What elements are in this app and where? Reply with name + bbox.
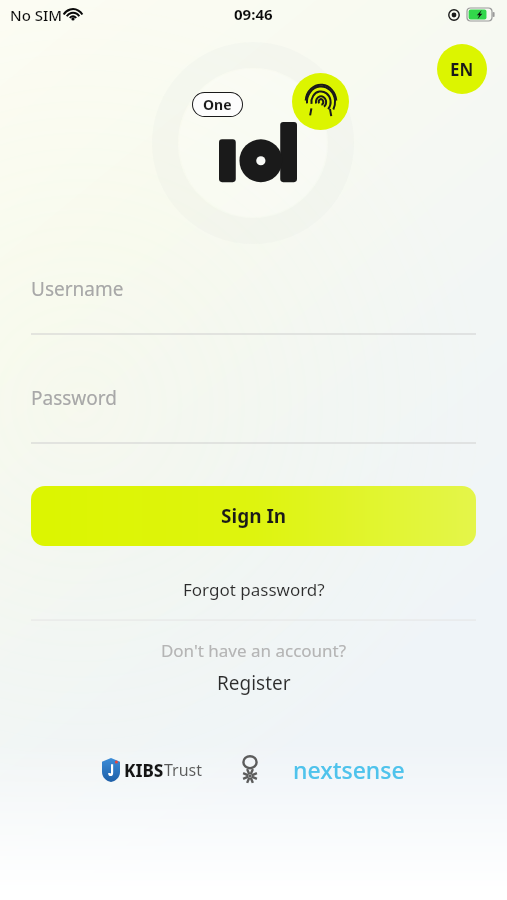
- staticText: Username: [31, 276, 124, 302]
- staticText: KIBS: [124, 759, 164, 782]
- button[interactable]: Biometric sign in: [292, 73, 349, 130]
- staticText: Forgot password?: [183, 578, 325, 601]
- staticText: Trust: [164, 759, 203, 781]
- staticText: EN: [450, 58, 474, 81]
- staticText: No SIM: [10, 5, 63, 25]
- staticText: Register: [217, 670, 291, 696]
- button[interactable]: Register: [31, 668, 476, 698]
- staticText: Password: [31, 385, 117, 411]
- button[interactable]: Username: [31, 276, 476, 335]
- staticText: Don't have an account?: [31, 639, 476, 662]
- button[interactable]: Password: [31, 385, 476, 444]
- staticText: Sign In: [221, 503, 287, 529]
- staticText: 09:46: [234, 4, 273, 24]
- button[interactable]: Sign In: [31, 486, 476, 546]
- button[interactable]: Forgot password?: [31, 572, 476, 606]
- staticText: nextsense: [293, 754, 405, 785]
- button[interactable]: Change language, English: [437, 44, 487, 94]
- staticText: One: [203, 95, 232, 114]
